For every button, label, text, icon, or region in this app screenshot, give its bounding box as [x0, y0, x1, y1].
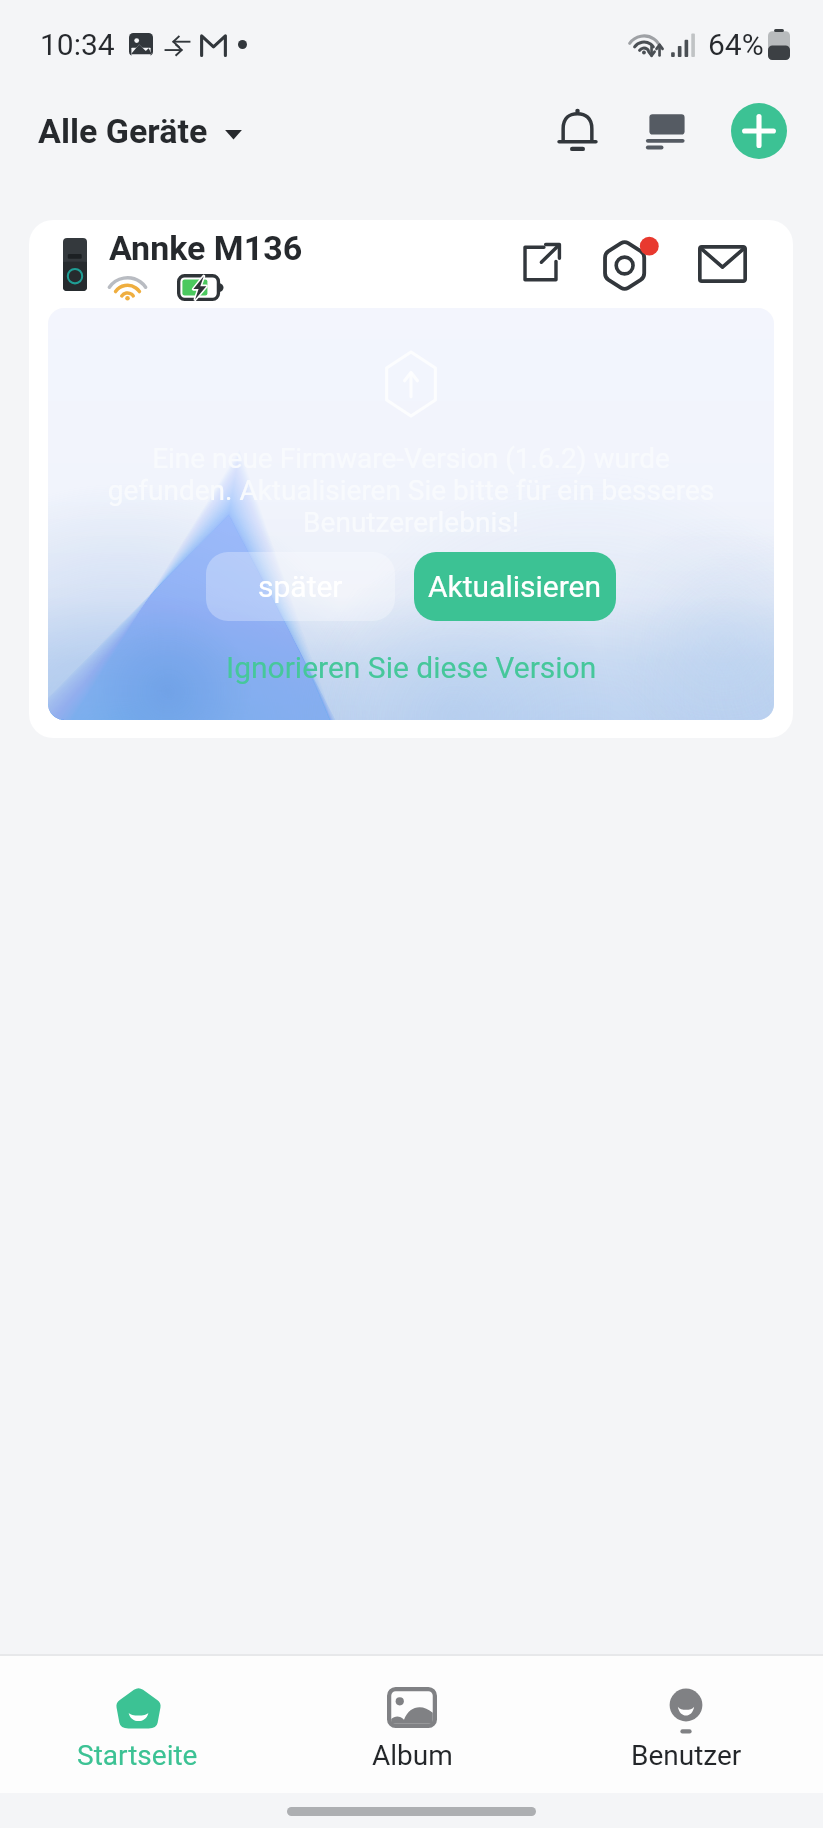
button[interactable]: Camera settings: [599, 231, 663, 297]
staticText: Alle Geräte: [38, 111, 208, 151]
staticText: Annke M136: [109, 228, 303, 268]
button[interactable]: Ignorieren Sie diese Version: [214, 646, 609, 689]
button[interactable]: Benutzer: [549, 1656, 823, 1772]
staticText: Aktualisieren: [428, 569, 602, 604]
button[interactable]: Cast to TV: [629, 93, 705, 169]
button[interactable]: Messages: [690, 231, 754, 297]
button[interactable]: Alle Geräte: [0, 103, 253, 159]
button[interactable]: Notifications: [539, 93, 615, 169]
button[interactable]: Share: [508, 231, 572, 297]
button[interactable]: später: [206, 552, 395, 621]
staticText: Startseite: [77, 1739, 198, 1772]
staticText: Benutzer: [631, 1739, 742, 1772]
staticText: 64%: [708, 27, 764, 62]
staticText: Eine neue Firmware-Version (1.6.2) wurde…: [48, 442, 774, 539]
button[interactable]: Startseite: [0, 1656, 275, 1772]
staticText: Ignorieren Sie diese Version: [226, 650, 597, 685]
staticText: 10:34: [40, 27, 115, 62]
staticText: Album: [372, 1739, 453, 1772]
button[interactable]: Album: [275, 1656, 549, 1772]
button[interactable]: Add device: [721, 93, 797, 169]
staticText: später: [258, 569, 343, 604]
button[interactable]: Aktualisieren: [414, 552, 616, 621]
